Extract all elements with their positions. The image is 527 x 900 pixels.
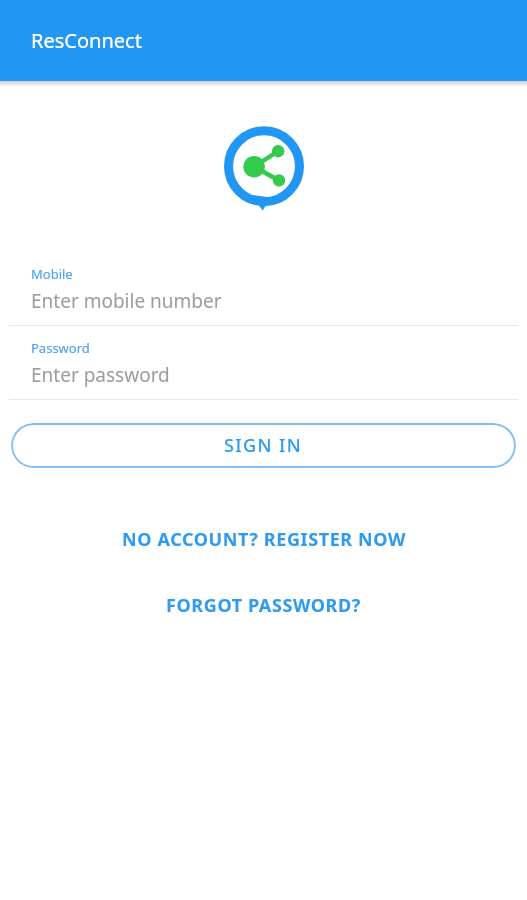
staticText: SIGN IN: [224, 433, 303, 458]
button[interactable]: SIGN IN: [11, 423, 516, 468]
staticText: NO ACCOUNT? REGISTER NOW: [122, 527, 406, 552]
staticText: Mobile: [31, 265, 73, 283]
button[interactable]: FORGOT PASSWORD?: [0, 590, 527, 620]
staticText: Enter mobile number: [31, 288, 222, 314]
staticText: FORGOT PASSWORD?: [166, 593, 361, 618]
button[interactable]: Mobile: [0, 265, 527, 326]
staticText: Enter password: [31, 362, 170, 388]
staticText: Password: [31, 339, 90, 357]
button[interactable]: NO ACCOUNT? REGISTER NOW: [0, 524, 527, 554]
staticText: ResConnect: [31, 27, 142, 54]
button[interactable]: Password: [0, 339, 527, 400]
